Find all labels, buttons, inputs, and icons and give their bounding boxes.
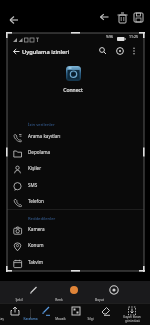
button[interactable]	[132, 11, 145, 24]
staticText: Uygulama izinleri	[22, 48, 70, 56]
button[interactable]	[6, 13, 22, 27]
staticText: Telefon	[28, 198, 44, 204]
staticText: Depolama	[28, 149, 51, 155]
button[interactable]: Paylaş	[1, 305, 29, 325]
button[interactable]: Mozaik	[62, 305, 90, 325]
button[interactable]: Boyut	[99, 283, 129, 303]
staticText: Arama kayıtları	[28, 133, 61, 139]
button[interactable]: Arama kayıtları	[7, 131, 144, 144]
staticText: Konum	[28, 242, 44, 248]
staticText: Paylaş	[0, 317, 4, 321]
staticText: Renk	[55, 297, 63, 301]
staticText: Mozaik	[55, 317, 66, 321]
staticText: Boyut	[95, 297, 104, 301]
staticText: 11:25	[129, 34, 138, 39]
button[interactable]: Silgi	[92, 305, 120, 325]
staticText: Takvim	[28, 259, 44, 265]
button[interactable]: Takvim	[7, 257, 144, 270]
staticText: Kayan ekran	[123, 315, 141, 319]
button[interactable]: Renk	[59, 283, 89, 303]
button[interactable]	[118, 305, 146, 325]
staticText: Kamera	[28, 226, 45, 232]
button[interactable]: Depolama	[7, 147, 144, 160]
button[interactable]: Şekil	[19, 283, 49, 303]
staticText: SMS	[28, 182, 38, 188]
button[interactable]: Karalama	[32, 305, 60, 325]
button[interactable]: Kişiler	[7, 163, 144, 176]
button[interactable]: Kamera	[7, 224, 144, 237]
staticText: Kişiler	[28, 165, 42, 171]
button[interactable]: Konum	[7, 240, 144, 253]
button[interactable]	[98, 11, 112, 24]
staticText: Reddedilenler	[28, 216, 56, 222]
staticText: İzin verilenler	[28, 122, 55, 128]
staticText: Connect	[63, 87, 83, 94]
staticText: Silgi	[87, 317, 94, 321]
staticText: Şekil	[15, 297, 23, 301]
staticText: Karalama	[23, 317, 38, 321]
button[interactable]	[116, 11, 129, 24]
staticText: %96	[106, 34, 113, 39]
staticText: görüntüsü	[125, 319, 140, 323]
button[interactable]: SMS	[7, 180, 144, 193]
button[interactable]: Telefon	[7, 196, 144, 209]
